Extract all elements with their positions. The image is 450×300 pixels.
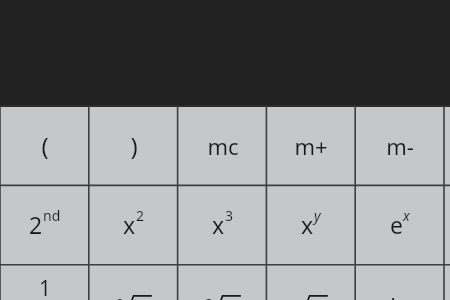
staticText: 2 — [29, 209, 43, 240]
staticText: x — [123, 209, 136, 240]
staticText: 3 — [205, 294, 214, 300]
button[interactable]: y — [266, 265, 355, 300]
button[interactable]: 3 — [178, 265, 267, 300]
button[interactable]: ln — [355, 265, 444, 300]
staticText: 2 — [136, 206, 145, 225]
button[interactable]: m- — [355, 106, 444, 185]
button[interactable]: mr — [444, 106, 450, 185]
button[interactable]: log — [444, 265, 450, 300]
button[interactable]: x — [89, 185, 178, 264]
button[interactable]: 2 — [89, 265, 178, 300]
staticText: e — [390, 209, 403, 240]
button[interactable]: e — [355, 185, 444, 264]
button[interactable]: 1 — [0, 265, 89, 300]
staticText: m+ — [294, 131, 328, 161]
staticText: x — [212, 209, 225, 240]
button[interactable]: 10 — [444, 185, 450, 264]
staticText: mc — [207, 131, 239, 161]
staticText: ln — [390, 290, 410, 300]
button[interactable]: mc — [178, 106, 267, 185]
staticText: nd — [43, 206, 61, 225]
staticText: ) — [130, 129, 138, 162]
staticText: 2 — [116, 294, 125, 300]
staticText: x — [403, 206, 410, 225]
button[interactable]: 2 — [0, 185, 89, 264]
staticText: ( — [41, 129, 49, 162]
button[interactable]: ( — [0, 106, 89, 185]
staticText: y — [314, 206, 321, 225]
button[interactable]: ) — [89, 106, 178, 185]
button[interactable]: x — [266, 185, 355, 264]
button[interactable]: x — [178, 185, 267, 264]
staticText: x — [301, 209, 314, 240]
staticText: m- — [386, 131, 414, 161]
staticText: 3 — [225, 206, 234, 225]
button[interactable]: m+ — [266, 106, 355, 185]
staticText: 1 — [39, 274, 52, 300]
